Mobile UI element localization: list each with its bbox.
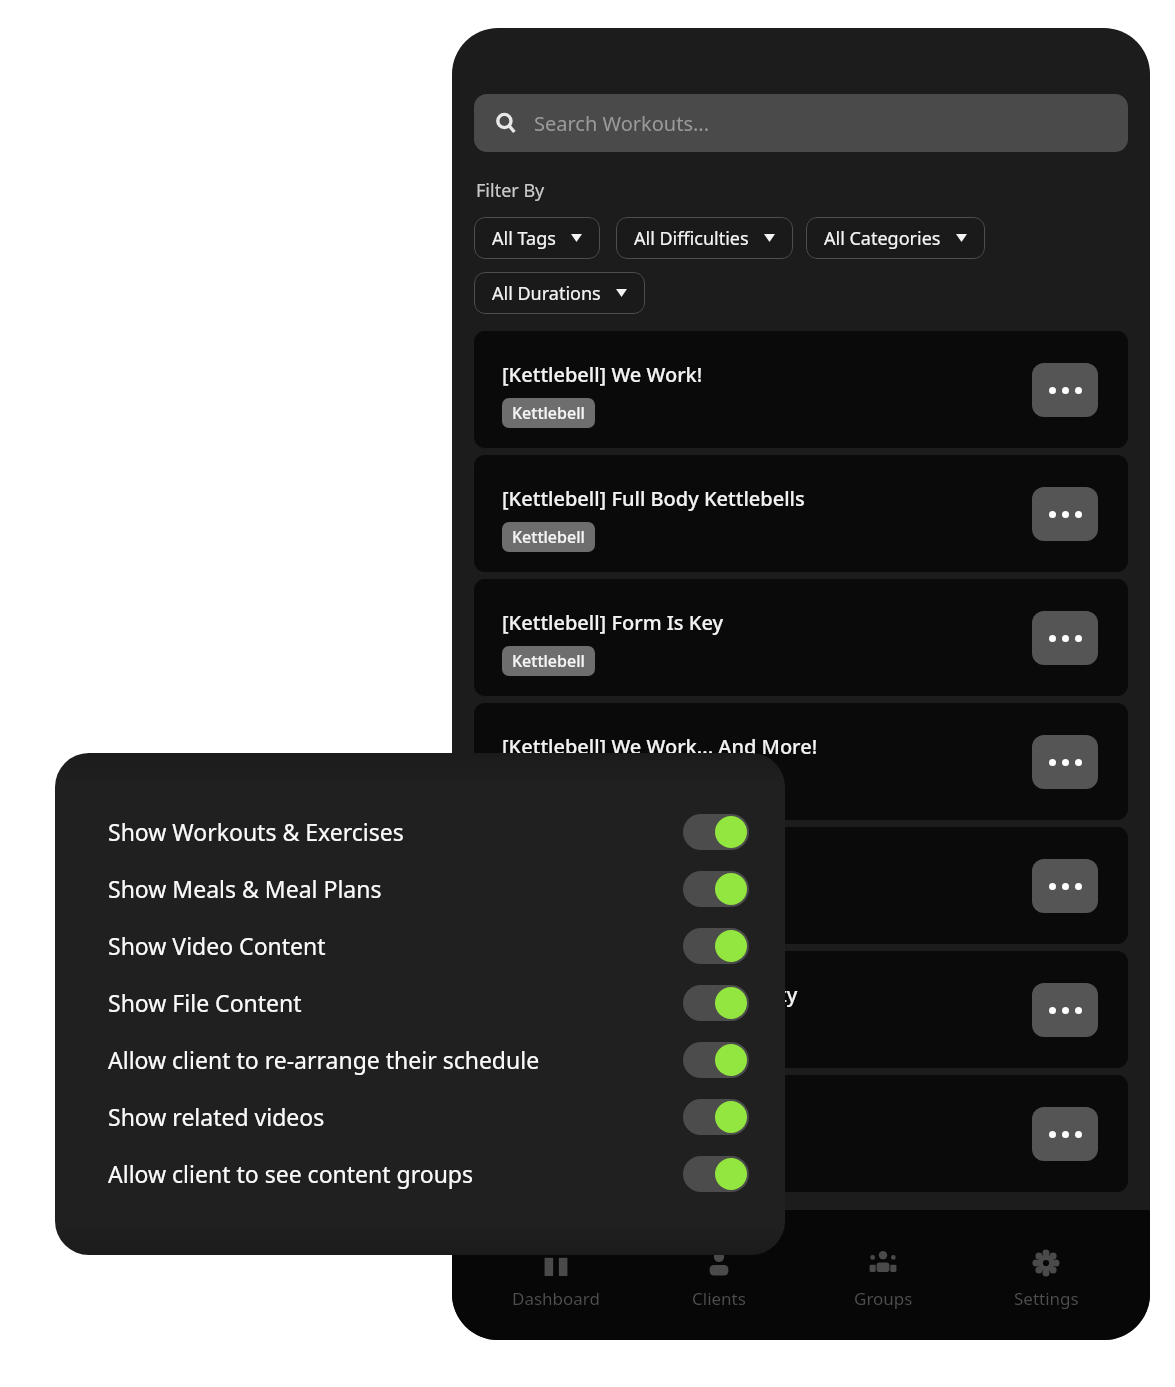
staticText: Show Meals & Meal Plans xyxy=(108,873,382,904)
staticText: Groups xyxy=(854,1287,913,1310)
button[interactable]: [Kettlebell] We Work! xyxy=(474,331,1128,448)
button[interactable]: Show Workouts & Exercises xyxy=(108,803,749,860)
button[interactable]: More options xyxy=(1032,859,1098,913)
button[interactable]: Clients xyxy=(659,1242,779,1314)
button[interactable]: All Categories xyxy=(806,217,985,259)
button[interactable]: More options xyxy=(1032,735,1098,789)
button[interactable]: Toggle on xyxy=(683,814,749,850)
staticText: Search Workouts... xyxy=(534,110,710,137)
button[interactable]: Toggle on xyxy=(683,871,749,907)
button[interactable]: [Kettlebell] Form Is Key xyxy=(474,579,1128,696)
staticText: Allow client to re-arrange their schedul… xyxy=(108,1044,540,1075)
button[interactable]: [Kettlebell] We Work... And More! xyxy=(474,703,1128,820)
staticText: [Kettlebell] Full Body Kettlebells xyxy=(502,485,805,512)
button[interactable]: Allow client to see content groups xyxy=(108,1145,749,1202)
button[interactable]: More options xyxy=(1032,487,1098,541)
staticText: Show Video Content xyxy=(108,930,326,961)
staticText: [Kettlebell] Strength & Mobility xyxy=(502,981,798,1008)
button[interactable]: More options xyxy=(1032,1107,1098,1161)
button[interactable]: Search Workouts... xyxy=(474,94,1128,152)
staticText: Show related videos xyxy=(108,1101,325,1132)
button[interactable]: Show File Content xyxy=(108,974,749,1031)
button[interactable]: All Difficulties xyxy=(616,217,793,259)
button[interactable]: Toggle on xyxy=(683,985,749,1021)
staticText: Show File Content xyxy=(108,987,302,1018)
staticText: Show Workouts & Exercises xyxy=(108,816,404,847)
button[interactable]: Settings xyxy=(986,1242,1106,1314)
button[interactable]: More options xyxy=(1032,983,1098,1037)
staticText: Allow client to see content groups xyxy=(108,1158,474,1189)
button[interactable]: Toggle on xyxy=(683,928,749,964)
button[interactable]: Toggle on xyxy=(683,1156,749,1192)
staticText: All Categories xyxy=(824,226,941,251)
button[interactable]: Toggle on xyxy=(683,1099,749,1135)
staticText: Settings xyxy=(1014,1287,1079,1310)
button[interactable]: [Kettlebell] Core Circuit xyxy=(474,1075,1128,1192)
staticText: Filter By xyxy=(476,178,545,203)
button[interactable]: Show Meals & Meal Plans xyxy=(108,860,749,917)
button[interactable]: Show related videos xyxy=(108,1088,749,1145)
staticText: Kettlebell xyxy=(512,526,585,548)
staticText: Clients xyxy=(692,1287,746,1310)
button[interactable]: Groups xyxy=(823,1242,943,1314)
button[interactable]: Toggle on xyxy=(683,1042,749,1078)
button[interactable]: [Kettlebell] Power Session xyxy=(474,827,1128,944)
button[interactable]: All Tags xyxy=(474,217,600,259)
button[interactable]: [Kettlebell] Strength & Mobility xyxy=(474,951,1128,1068)
staticText: [Kettlebell] Power Session xyxy=(502,857,749,884)
staticText: All Durations xyxy=(492,281,601,306)
staticText: Dashboard xyxy=(512,1287,601,1310)
staticText: Kettlebell xyxy=(512,650,585,672)
button[interactable]: Allow client to re-arrange their schedul… xyxy=(108,1031,749,1088)
button[interactable]: More options xyxy=(1032,363,1098,417)
button[interactable]: Show Video Content xyxy=(108,917,749,974)
staticText: Kettlebell xyxy=(512,402,585,424)
button[interactable]: Dashboard xyxy=(496,1242,616,1314)
staticText: [Kettlebell] We Work... And More! xyxy=(502,733,818,760)
staticText: [Kettlebell] Core Circuit xyxy=(502,1105,723,1132)
staticText: All Difficulties xyxy=(634,226,749,251)
button[interactable]: All Durations xyxy=(474,272,645,314)
button[interactable]: [Kettlebell] Full Body Kettlebells xyxy=(474,455,1128,572)
staticText: [Kettlebell] Form Is Key xyxy=(502,609,724,636)
staticText: [Kettlebell] We Work! xyxy=(502,361,703,388)
button[interactable]: More options xyxy=(1032,611,1098,665)
staticText: All Tags xyxy=(492,226,556,251)
